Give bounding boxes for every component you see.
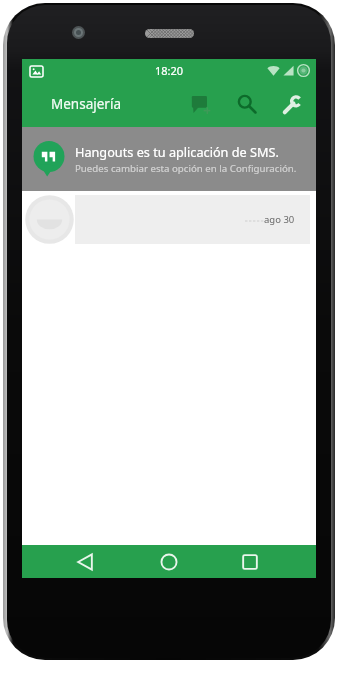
- button[interactable]: ago 30: [22, 195, 316, 244]
- staticText: Hangouts es tu aplicación de SMS.: [75, 143, 279, 160]
- button[interactable]: Settings: [270, 81, 314, 127]
- staticText: ago 30: [264, 213, 295, 226]
- button[interactable]: Search: [226, 81, 270, 127]
- staticText: Mensajería: [51, 95, 121, 113]
- button[interactable]: New conversation: [182, 81, 226, 127]
- button[interactable]: Recent apps: [218, 545, 316, 578]
- button[interactable]: Back: [22, 545, 120, 578]
- staticText: Puedes cambiar esta opción en la Configu…: [75, 162, 297, 175]
- button[interactable]: Home: [120, 545, 218, 578]
- button[interactable]: Hangouts es tu aplicación de SMS.: [22, 127, 316, 191]
- staticText: 18:20: [155, 63, 184, 78]
